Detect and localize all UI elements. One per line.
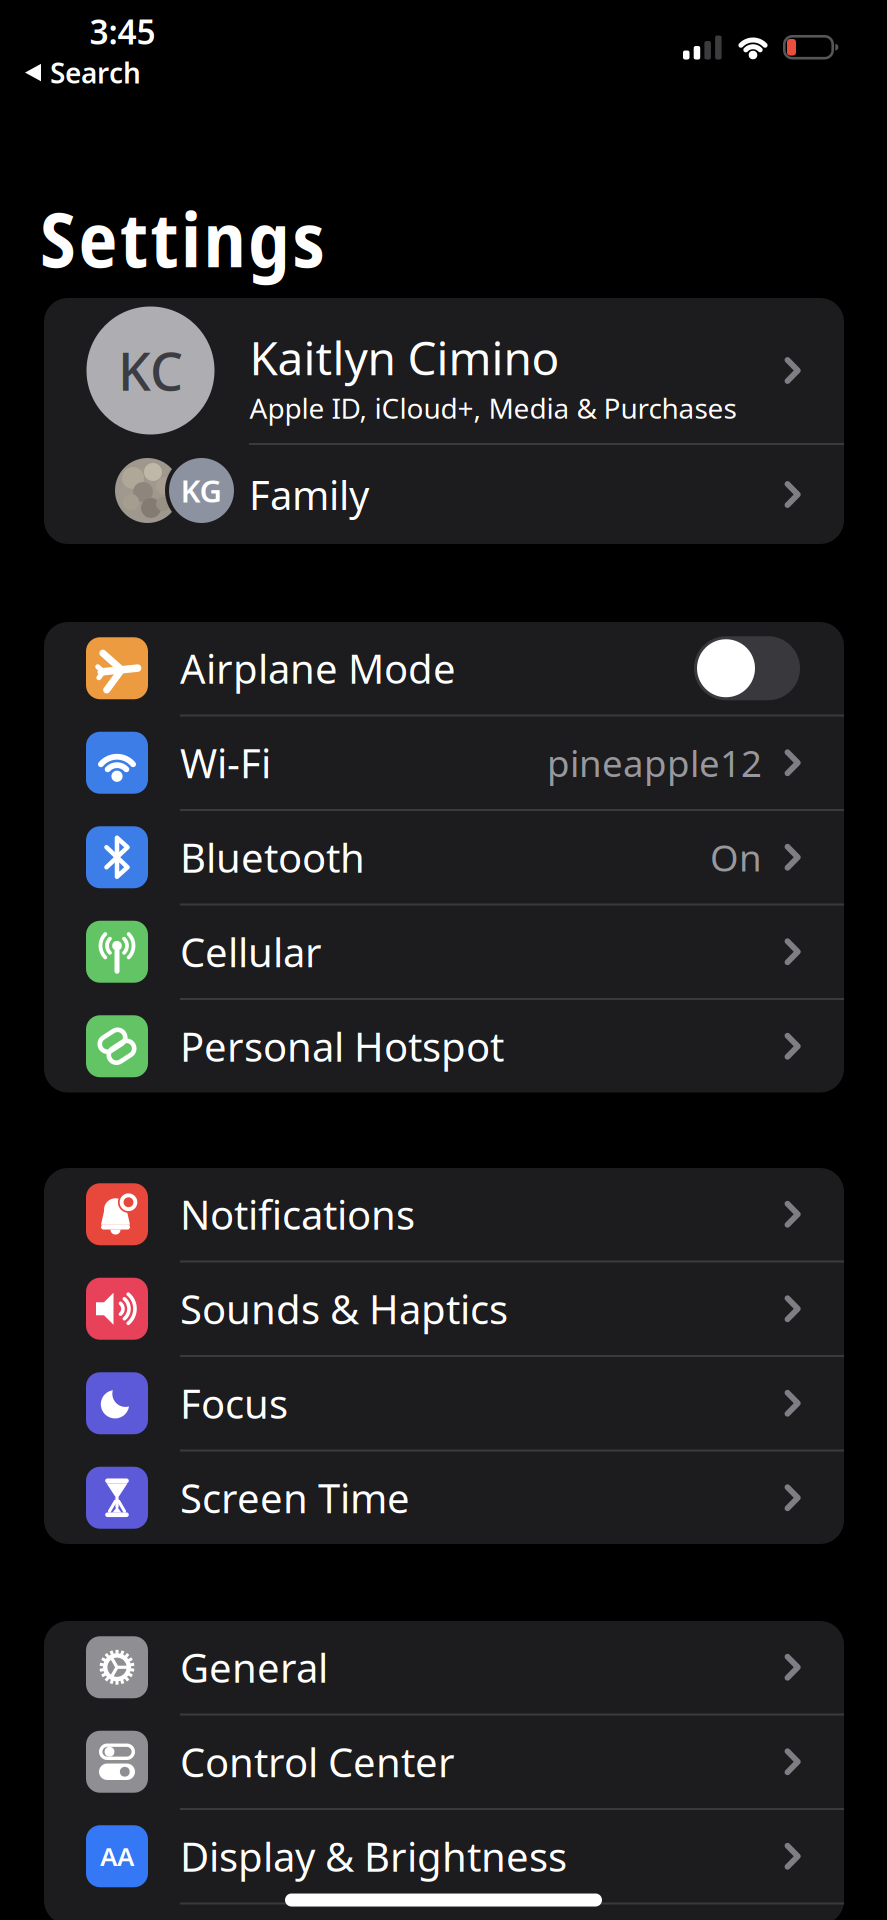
button[interactable]: Sounds & Haptics [44, 1262, 844, 1355]
staticText: Apple ID, iCloud+, Media & Purchases [249, 389, 736, 427]
staticText: General [180, 1640, 328, 1694]
staticText: Airplane Mode [180, 641, 456, 695]
staticText: On [710, 832, 762, 882]
staticText: Cellular [180, 924, 322, 979]
staticText: Personal Hotspot [180, 1019, 504, 1073]
staticText: 3:45 [89, 9, 155, 54]
button[interactable]: Cellular [44, 905, 844, 998]
staticText: Screen Time [180, 1470, 410, 1525]
staticText: Display & Brightness [180, 1829, 567, 1883]
staticText: Bluetooth [180, 830, 365, 884]
button[interactable]: Bluetooth [44, 811, 844, 903]
staticText: KC [118, 335, 183, 406]
button[interactable]: Control Center [44, 1715, 844, 1808]
staticText: Focus [180, 1376, 288, 1430]
staticText: Sounds & Haptics [180, 1281, 508, 1336]
button[interactable]: Screen Time [44, 1451, 844, 1544]
staticText: pineapple12 [547, 738, 762, 788]
button[interactable]: KG [44, 445, 844, 544]
staticText: Notifications [180, 1187, 415, 1241]
staticText: Search [50, 53, 141, 92]
button[interactable]: Wi-Fi [44, 716, 844, 809]
button[interactable]: KC [44, 298, 844, 443]
button[interactable]: Personal Hotspot [44, 1000, 844, 1092]
staticText: Control Center [180, 1734, 455, 1789]
button[interactable]: General [44, 1621, 844, 1713]
button[interactable]: Notifications [44, 1168, 844, 1260]
staticText: Family [249, 467, 369, 522]
staticText: AA [100, 1838, 134, 1874]
button[interactable]: Search [25, 53, 141, 92]
button[interactable]: Focus [44, 1357, 844, 1449]
button[interactable]: Airplane Mode [694, 636, 800, 700]
button[interactable]: AA [44, 1810, 844, 1902]
staticText: Wi-Fi [180, 735, 271, 790]
staticText: Settings [40, 187, 324, 289]
staticText: KG [180, 469, 222, 512]
staticText: Kaitlyn Cimino [249, 326, 559, 389]
